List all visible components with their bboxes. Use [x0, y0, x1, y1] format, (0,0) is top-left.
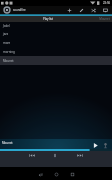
button[interactable]: Mounet: [96, 16, 112, 22]
button[interactable]: Previous: [26, 153, 38, 166]
staticText: Mounet: [2, 141, 13, 145]
button[interactable]: more: [0, 38, 112, 47]
button[interactable]: morning: [0, 47, 112, 56]
staticText: 23:56: [103, 1, 111, 5]
button[interactable]: Add: [65, 6, 73, 14]
staticText: Mounet: [3, 59, 14, 63]
button[interactable]: jazz: [0, 29, 112, 38]
staticText: soundfire: [13, 8, 26, 12]
button[interactable]: Play list: [0, 16, 96, 22]
staticText: morning: [3, 50, 15, 54]
button[interactable]: Recents: [67, 169, 77, 179]
button[interactable]: Edit: [77, 6, 85, 14]
staticText: Play list: [43, 17, 53, 21]
staticText: more: [3, 41, 11, 45]
button[interactable]: Now playing options: [101, 141, 109, 149]
button[interactable]: Mounet: [0, 56, 112, 65]
staticText: Mounet: [99, 17, 110, 21]
button[interactable]: Home: [51, 169, 61, 179]
staticText: Jodel: [3, 24, 10, 28]
button[interactable]: Play: [91, 141, 99, 149]
button[interactable]: Pause: [50, 153, 60, 166]
staticText: jazz: [3, 32, 9, 36]
button[interactable]: Back: [35, 169, 45, 179]
button[interactable]: App logo: [3, 6, 11, 14]
button[interactable]: Shuffle: [89, 6, 97, 14]
button[interactable]: Next: [74, 153, 86, 166]
button[interactable]: Cast: [101, 6, 109, 14]
button[interactable]: Jodel: [0, 22, 112, 29]
